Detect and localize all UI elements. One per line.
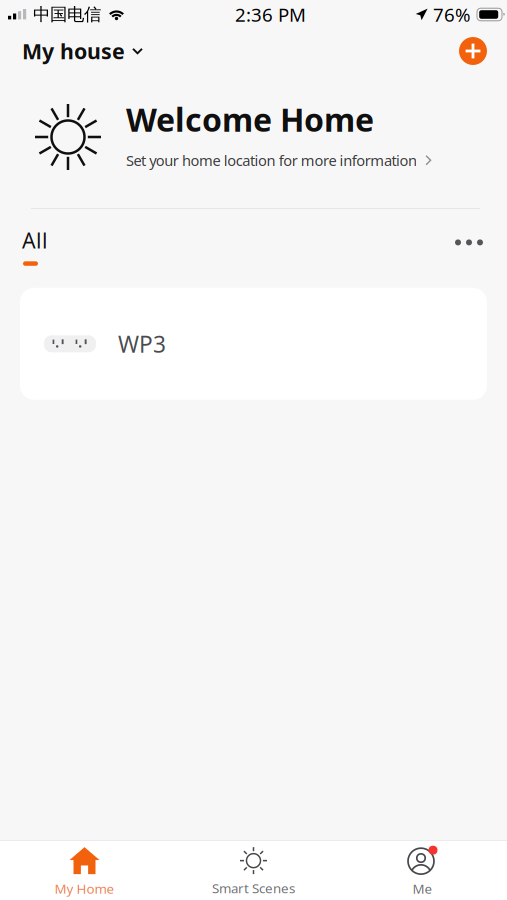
button[interactable]: Smart Scenes <box>169 837 338 900</box>
button[interactable]: Welcome Home <box>0 81 507 208</box>
button[interactable]: My Home <box>0 837 169 900</box>
button[interactable]: Me <box>338 837 507 900</box>
button[interactable]: More options <box>433 227 507 269</box>
button[interactable]: Add device <box>443 32 507 78</box>
staticText: My house <box>22 37 125 65</box>
staticText: WP3 <box>118 329 166 359</box>
staticText: Smart Scenes <box>212 879 295 897</box>
staticText: All <box>22 226 48 254</box>
staticText: Me <box>412 880 432 897</box>
staticText: My Home <box>54 880 114 897</box>
button[interactable]: My house <box>0 32 159 78</box>
staticText: Welcome Home <box>126 98 374 140</box>
staticText: 中国电信 <box>33 4 101 25</box>
staticText: 76% <box>433 2 471 27</box>
staticText: 2:36 PM <box>235 2 306 27</box>
staticText: Set your home location for more informat… <box>126 150 417 170</box>
button[interactable]: WP3 <box>0 288 507 400</box>
button[interactable]: All <box>0 209 68 288</box>
